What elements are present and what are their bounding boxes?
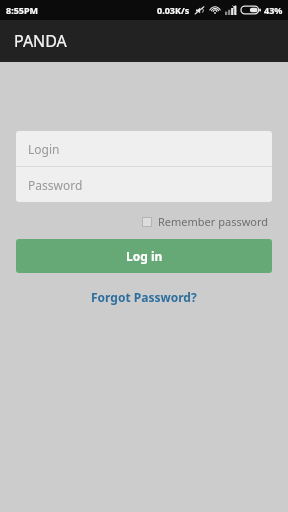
staticText: Log in xyxy=(126,248,163,264)
button[interactable]: Login xyxy=(16,131,272,166)
staticText: 0.03K/s xyxy=(157,4,190,16)
staticText: Remember password xyxy=(158,214,269,229)
button[interactable]: Log in xyxy=(16,239,272,273)
staticText: Password xyxy=(28,177,83,193)
staticText: Forgot Password? xyxy=(91,289,197,305)
button[interactable]: Remember password xyxy=(140,211,271,232)
button[interactable]: Forgot Password? xyxy=(81,286,207,308)
button[interactable]: Password xyxy=(16,167,272,202)
staticText: PANDA xyxy=(14,30,67,52)
staticText: 8:55PM xyxy=(6,4,39,16)
staticText: 43% xyxy=(264,4,283,16)
staticText: Login xyxy=(28,141,60,157)
